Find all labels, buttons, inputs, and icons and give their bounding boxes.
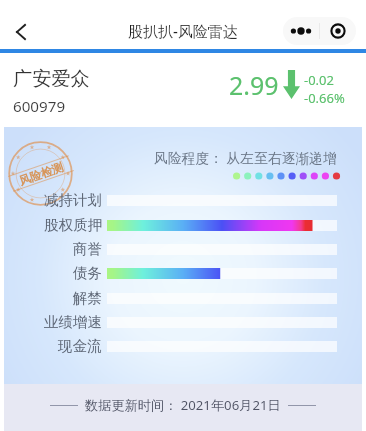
button[interactable]: Close mini program bbox=[320, 17, 356, 45]
button[interactable]: 解禁 bbox=[4, 286, 362, 310]
button[interactable]: Back bbox=[4, 14, 37, 50]
button[interactable]: 商誉 bbox=[4, 237, 362, 261]
staticText: 600979 bbox=[13, 96, 66, 117]
staticText: 股权质押 bbox=[44, 216, 102, 234]
staticText: 广安爱众 bbox=[13, 67, 90, 91]
staticText: 数据更新时间： 2021年06月21日 bbox=[85, 396, 281, 414]
staticText: 债务 bbox=[73, 264, 102, 282]
button[interactable]: 债务 bbox=[4, 261, 362, 285]
staticText: 2.99 bbox=[229, 68, 279, 102]
staticText: 风险程度： 从左至右逐渐递增 bbox=[154, 148, 337, 167]
button[interactable]: 股权质押 bbox=[4, 213, 362, 237]
staticText: 业绩增速 bbox=[44, 313, 102, 331]
button[interactable]: 减持计划 bbox=[4, 188, 362, 212]
staticText: 风险检测 bbox=[17, 160, 65, 188]
staticText: 现金流 bbox=[58, 337, 102, 355]
staticText: 股扒扒-风险雷达 bbox=[128, 21, 238, 41]
staticText: 解禁 bbox=[73, 289, 102, 307]
button[interactable]: More bbox=[283, 17, 319, 45]
staticText: -0.02 bbox=[304, 71, 334, 89]
button[interactable]: 现金流 bbox=[4, 334, 362, 358]
button[interactable]: 业绩增速 bbox=[4, 310, 362, 334]
staticText: 商誉 bbox=[73, 240, 102, 258]
staticText: -0.66% bbox=[304, 89, 345, 107]
staticText: 减持计划 bbox=[44, 191, 102, 209]
